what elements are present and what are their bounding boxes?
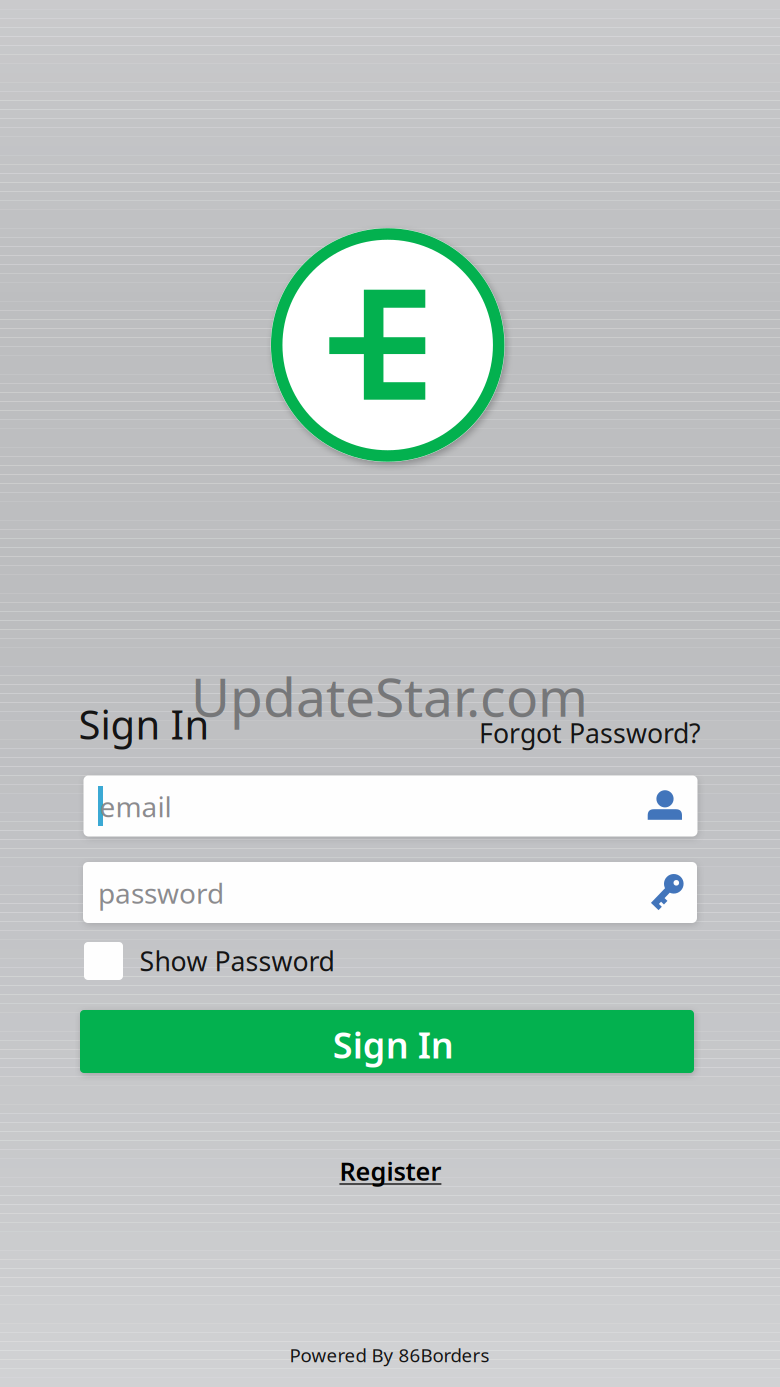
staticText: Sign In xyxy=(333,1021,454,1068)
button[interactable]: password xyxy=(83,862,697,923)
button[interactable]: Register xyxy=(339,1154,441,1188)
button[interactable]: Sign In xyxy=(80,1010,694,1073)
staticText: Sign In xyxy=(78,697,209,750)
staticText: UpdateStar.com xyxy=(191,661,588,731)
staticText: password xyxy=(98,874,224,912)
staticText: email xyxy=(99,788,171,825)
button[interactable]: Forgot Password? xyxy=(479,715,701,751)
staticText: Forgot Password? xyxy=(479,715,701,751)
staticText: Register xyxy=(339,1154,441,1188)
staticText: Show Password xyxy=(139,943,334,979)
button[interactable]: email xyxy=(83,775,697,836)
staticText: Powered By 86Borders xyxy=(289,1343,489,1367)
button[interactable]: Show Password xyxy=(84,939,404,983)
